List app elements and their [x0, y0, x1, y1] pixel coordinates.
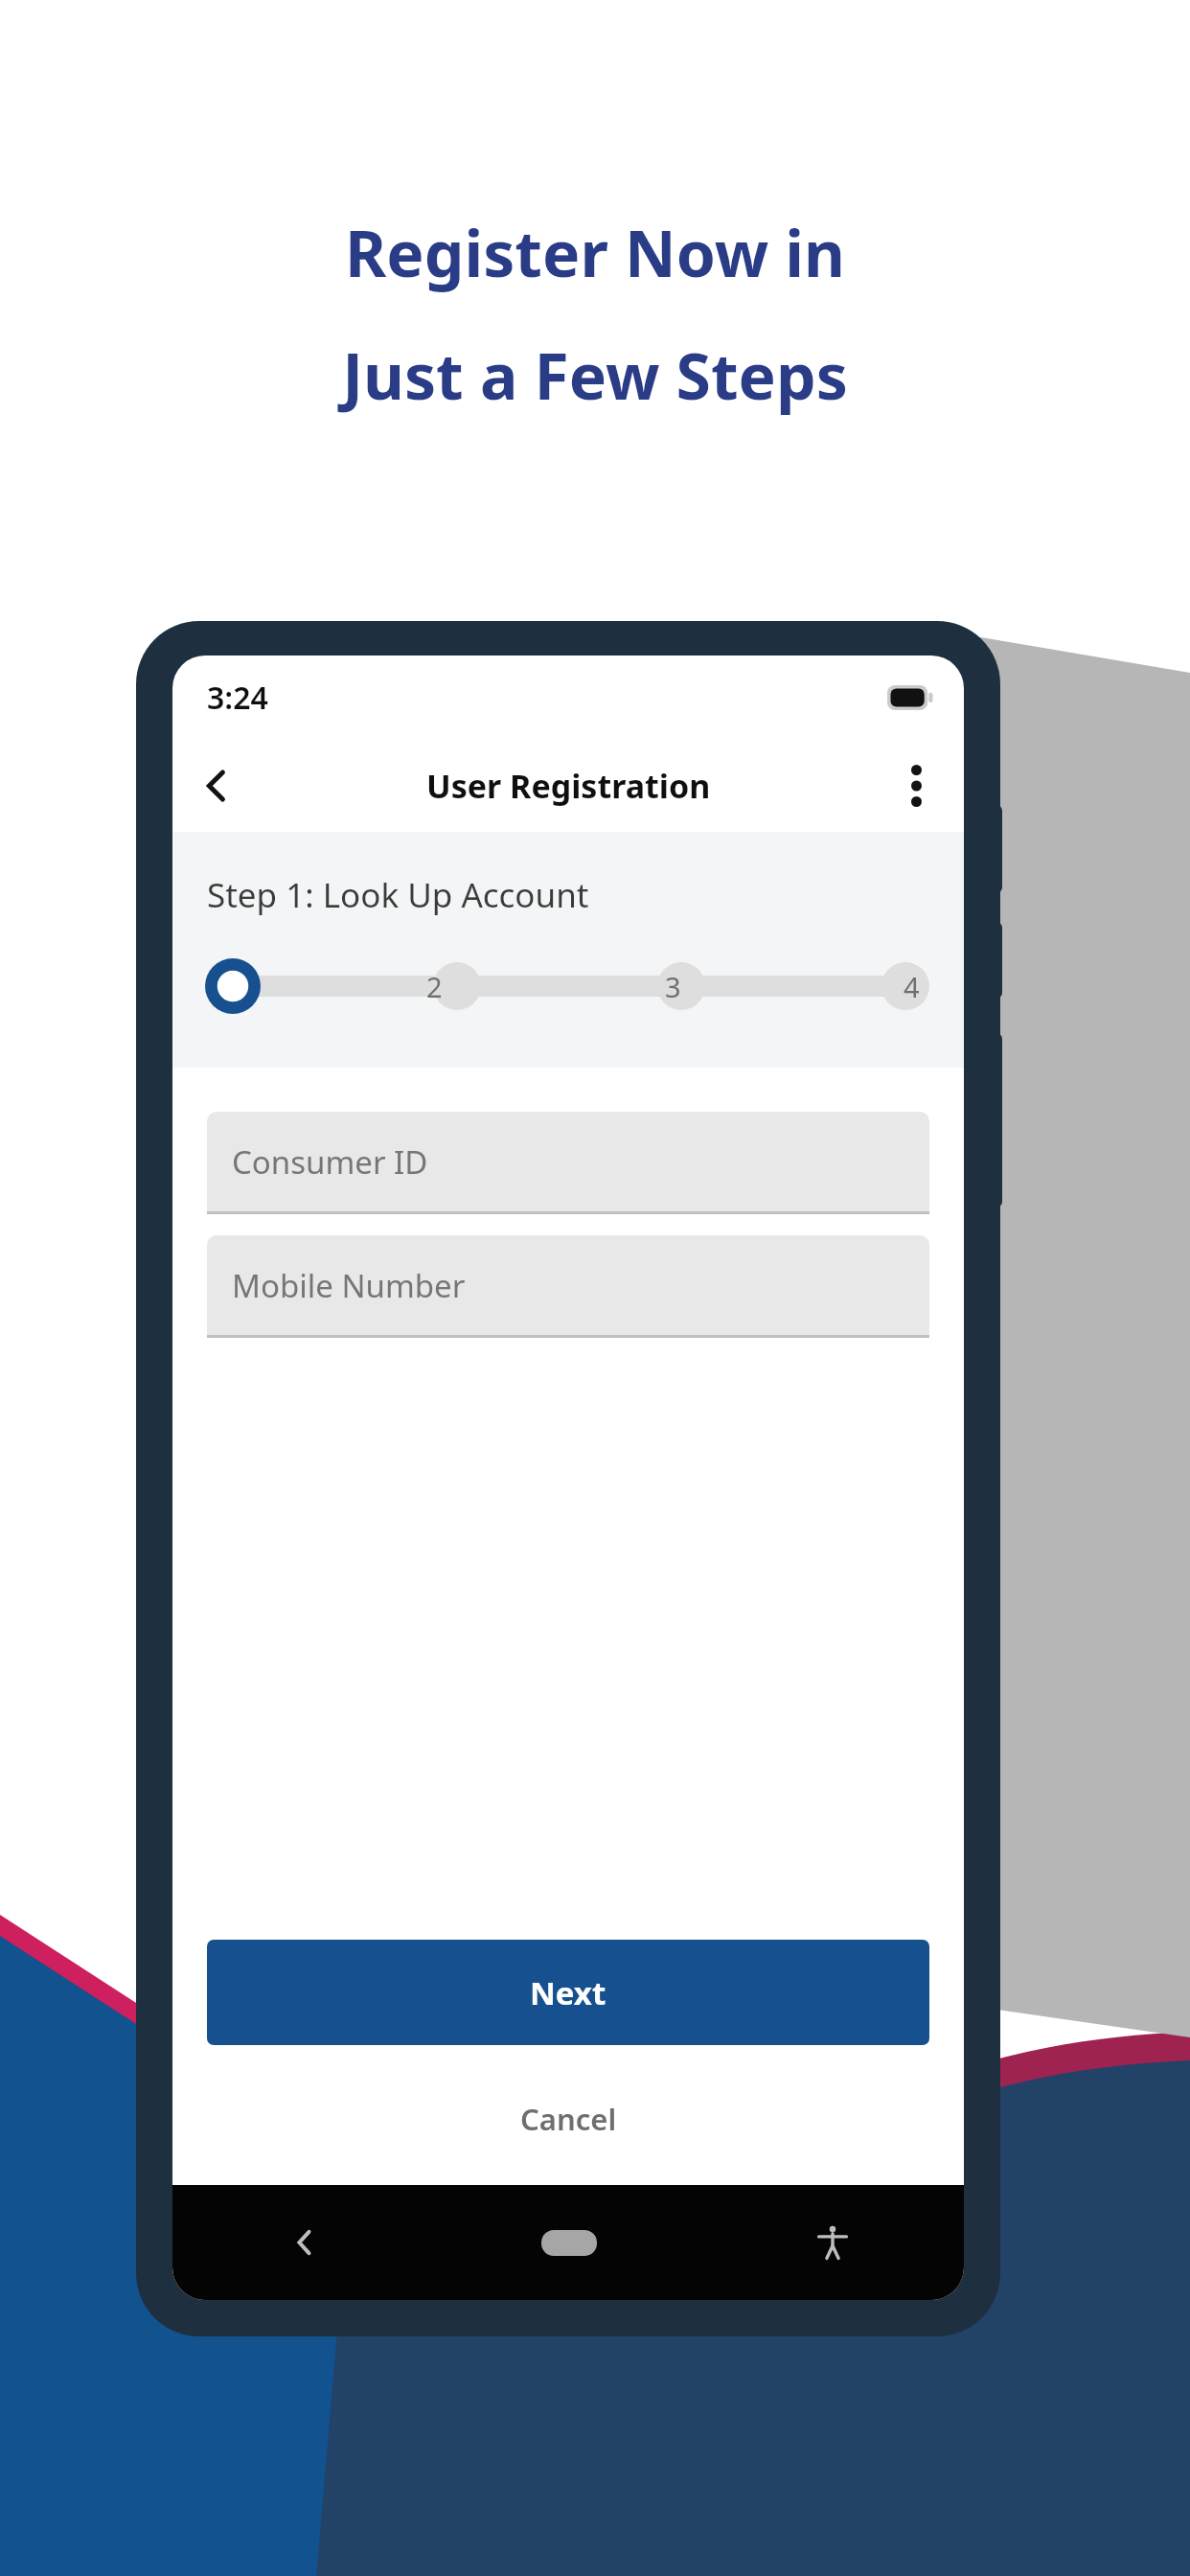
- button[interactable]: Accessibility: [700, 2185, 964, 2300]
- button[interactable]: Cancel: [478, 2087, 659, 2150]
- button[interactable]: Back: [172, 2185, 437, 2300]
- staticText: Mobile Number: [232, 1264, 466, 1307]
- staticText: Next: [530, 1971, 606, 2014]
- staticText: 3: [665, 968, 681, 1005]
- button[interactable]: Mobile Number: [207, 1235, 929, 1338]
- button[interactable]: Next: [207, 1940, 929, 2045]
- staticText: Cancel: [520, 2099, 617, 2139]
- staticText: 2: [426, 968, 443, 1005]
- staticText: Consumer ID: [232, 1140, 428, 1184]
- staticText: Register Now in: [345, 209, 845, 295]
- staticText: 4: [904, 968, 920, 1005]
- staticText: User Registration: [426, 764, 711, 808]
- staticText: Step 1: Look Up Account: [207, 872, 589, 918]
- button[interactable]: More options: [883, 753, 949, 818]
- button[interactable]: Back: [184, 753, 249, 818]
- staticText: Just a Few Steps: [342, 332, 848, 418]
- button[interactable]: Consumer ID: [207, 1112, 929, 1214]
- button[interactable]: Home: [437, 2185, 700, 2300]
- staticText: 3:24: [207, 677, 268, 719]
